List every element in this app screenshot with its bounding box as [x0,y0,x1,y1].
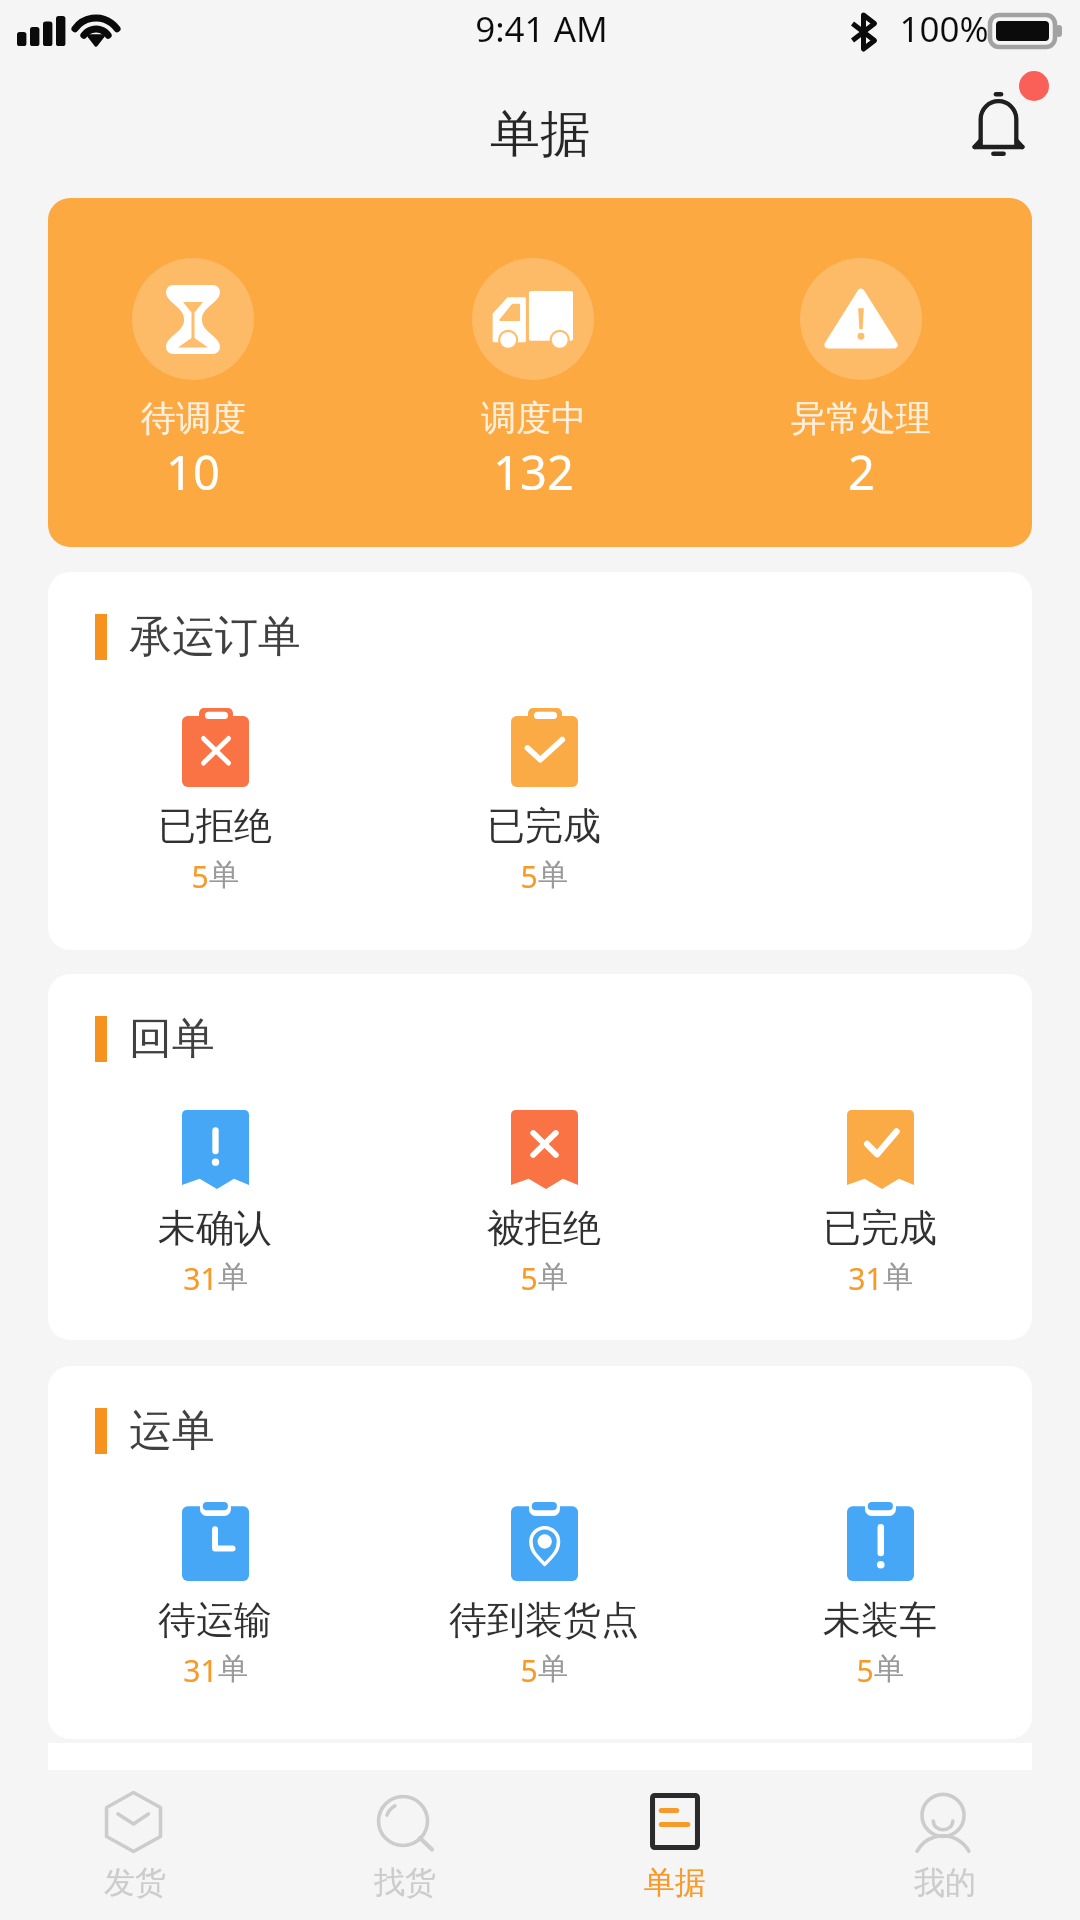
staticText: 找货 [374,1863,436,1902]
button[interactable]: 未确认 [51,1110,379,1299]
button[interactable]: 未装车 [716,1502,1032,1691]
staticText: 单 [538,1650,568,1688]
staticText: 单据 [644,1863,706,1902]
staticText: 2 [848,440,875,504]
staticText: 单 [874,1650,904,1688]
staticText: 承运订单 [129,610,301,664]
staticText: 待调度 [141,396,246,440]
staticText: 单 [209,856,239,894]
button[interactable]: 找货 [270,1770,540,1920]
button[interactable]: 已拒绝 [51,708,379,897]
staticText: 单 [538,856,568,894]
staticText: 已完成 [823,1204,937,1252]
button[interactable]: 待到装货点 [380,1502,708,1691]
staticText: 发货 [104,1863,166,1902]
button[interactable]: 待运输 [51,1502,379,1691]
button[interactable]: 异常处理 [697,198,1025,547]
staticText: 31 [183,1650,218,1691]
staticText: 待运输 [158,1596,272,1644]
staticText: 异常处理 [791,396,931,440]
staticText: 已完成 [487,802,601,850]
button[interactable]: 发货 [0,1770,270,1920]
staticText: 5 [520,1650,538,1691]
button[interactable]: 单据 [540,1770,810,1920]
staticText: 5 [520,856,538,897]
staticText: 单 [218,1650,248,1688]
staticText: 9:41 AM [475,5,608,53]
button[interactable]: 已完成 [380,708,708,897]
staticText: 132 [493,440,574,504]
staticText: 单 [218,1258,248,1296]
staticText: 我的 [914,1863,976,1902]
staticText: 运单 [129,1404,215,1458]
staticText: 调度中 [481,396,586,440]
button[interactable]: 调度中 [369,198,697,547]
staticText: 31 [183,1258,218,1299]
staticText: 未装车 [823,1596,937,1644]
button[interactable]: 被拒绝 [380,1110,708,1299]
staticText: 被拒绝 [487,1204,601,1252]
staticText: 单 [538,1258,568,1296]
staticText: 5 [191,856,209,897]
staticText: 5 [520,1258,538,1299]
button[interactable]: 我的 [810,1770,1080,1920]
staticText: 待到装货点 [449,1596,639,1644]
staticText: 10 [166,440,220,504]
staticText: 未确认 [158,1204,272,1252]
staticText: 回单 [129,1012,215,1066]
button[interactable]: 待调度 [48,198,357,547]
button[interactable]: 通知 [943,69,1053,179]
staticText: 已拒绝 [158,802,272,850]
button[interactable]: 已完成 [716,1110,1032,1299]
staticText: 31 [848,1258,883,1299]
staticText: 单据 [490,103,590,166]
staticText: 100% [899,5,989,53]
staticText: 5 [856,1650,874,1691]
staticText: 单 [883,1258,913,1296]
